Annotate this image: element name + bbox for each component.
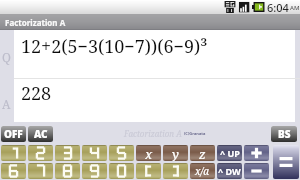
staticText: AC	[34, 127, 48, 141]
staticText: Factorization A	[5, 17, 66, 28]
staticText: x/a	[195, 164, 210, 178]
button[interactable]: Factorization A	[0, 14, 300, 30]
staticText: Factorization A	[124, 128, 182, 139]
staticText: 12+2(5−3(10−7))(6−9)³	[21, 34, 208, 59]
button[interactable]: y	[163, 145, 188, 161]
staticText: y	[172, 145, 179, 161]
button[interactable]: Equals	[273, 145, 299, 179]
button[interactable]: ^ DW	[217, 163, 242, 179]
staticText: z	[199, 145, 206, 161]
button[interactable]: x/a	[190, 163, 215, 179]
button[interactable]	[1, 163, 26, 179]
button[interactable]	[55, 163, 80, 179]
button[interactable]	[55, 145, 80, 161]
button[interactable]	[28, 145, 53, 161]
button[interactable]: Open bracket	[136, 163, 161, 179]
staticText: ^ UP	[220, 147, 240, 159]
staticText: (C)Granata	[184, 131, 206, 136]
staticText: BS	[278, 127, 291, 141]
staticText: 228	[21, 81, 52, 106]
staticText: Q	[2, 49, 11, 65]
button[interactable]	[109, 163, 134, 179]
button[interactable]: z	[190, 145, 215, 161]
button[interactable]: Close bracket	[163, 163, 188, 179]
button[interactable]: Plus	[244, 145, 269, 161]
button[interactable]: OFF	[1, 126, 26, 142]
button[interactable]: Minus	[244, 163, 269, 179]
staticText: x	[145, 145, 153, 161]
button[interactable]	[82, 145, 107, 161]
button[interactable]: x	[136, 145, 161, 161]
button[interactable]: BS	[271, 126, 297, 142]
button[interactable]	[28, 163, 53, 179]
button[interactable]	[82, 163, 107, 179]
button[interactable]: ^ UP	[217, 145, 242, 161]
staticText: AM	[290, 4, 300, 12]
staticText: OFF	[4, 127, 23, 141]
button[interactable]	[109, 145, 134, 161]
staticText: ^ DW	[218, 165, 241, 177]
button[interactable]: AC	[28, 126, 53, 142]
staticText: A	[2, 96, 11, 112]
staticText: 6:04	[267, 0, 289, 14]
button[interactable]	[1, 145, 26, 161]
